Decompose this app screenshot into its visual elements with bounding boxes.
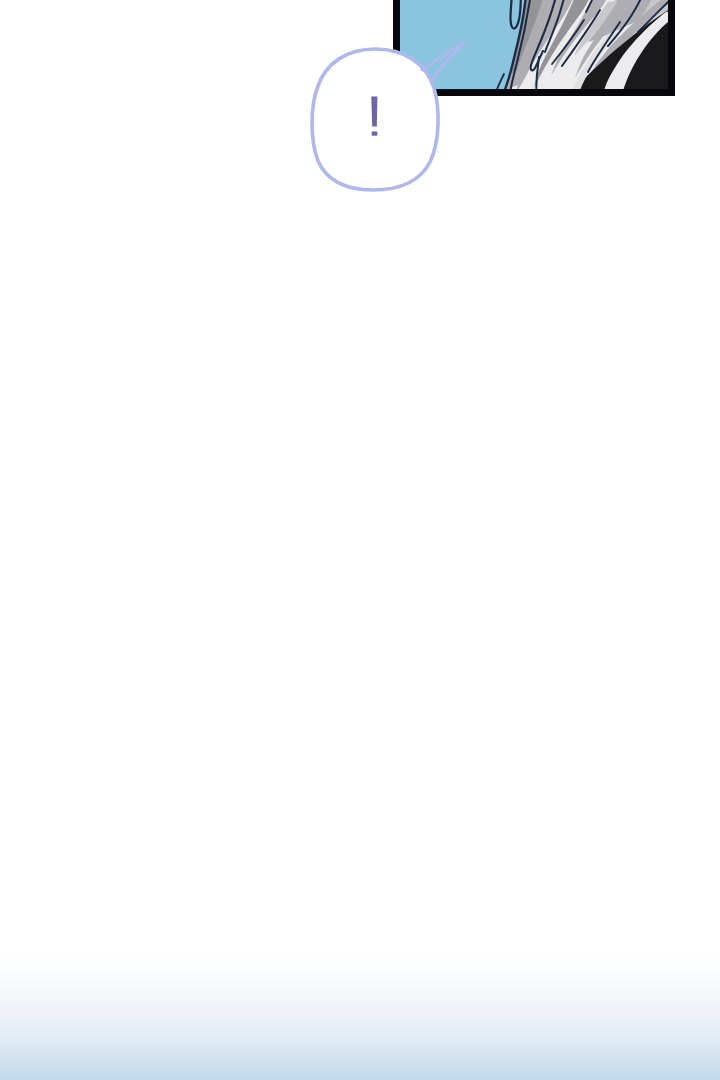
button[interactable]: Webtoon page, tap to show reader control… — [0, 0, 720, 1080]
button[interactable]: Comic panel — [393, 0, 675, 96]
button[interactable]: Speech balloon — [310, 47, 440, 192]
